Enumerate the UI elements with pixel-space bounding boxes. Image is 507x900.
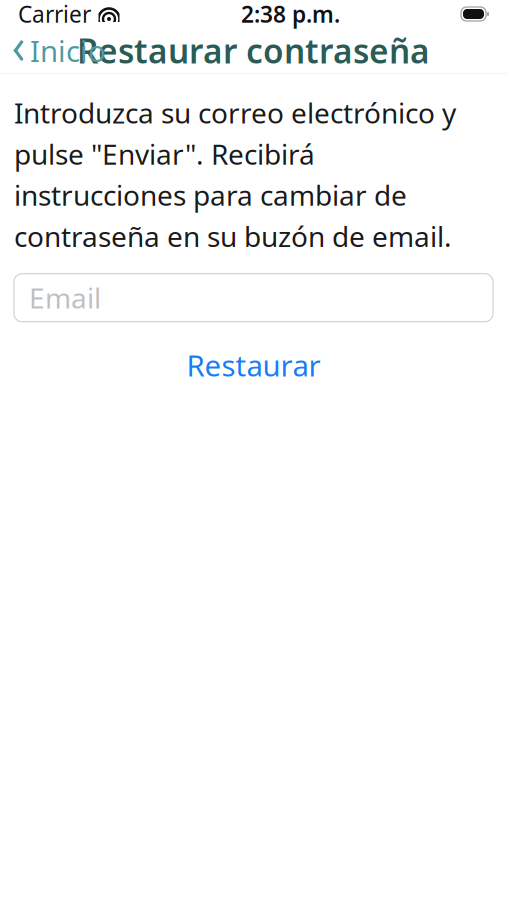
staticText: Carrier bbox=[18, 0, 91, 29]
button[interactable]: Inicio bbox=[0, 25, 116, 76]
button[interactable]: Restaurar bbox=[168, 340, 338, 391]
staticText: Email bbox=[29, 279, 101, 316]
staticText: 2:38 p.m. bbox=[241, 0, 340, 29]
staticText: Inicio bbox=[30, 31, 106, 70]
staticText: Restaurar bbox=[186, 346, 320, 385]
staticText: Introduzca su correo electrónico y pulse… bbox=[14, 94, 456, 255]
button[interactable]: Email bbox=[14, 274, 493, 322]
staticText: Restaurar contraseña bbox=[77, 28, 430, 73]
